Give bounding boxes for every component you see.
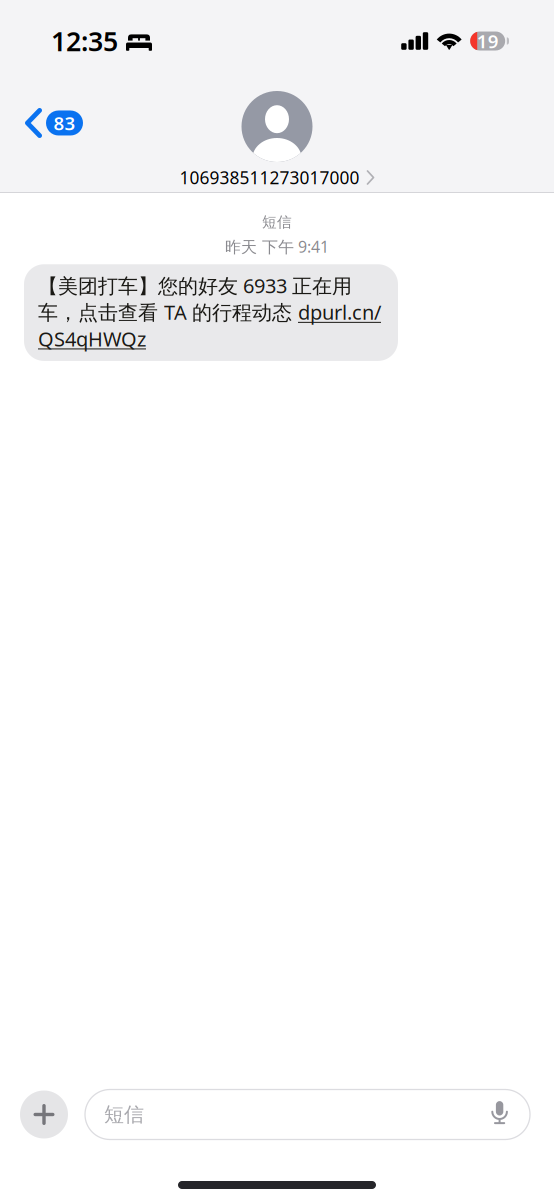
staticText: 12:35	[51, 23, 118, 59]
staticText: 【美团打车】您的好友 6933 正在用车，点击查看 TA 的行程动态 dpurl…	[38, 272, 381, 352]
button[interactable]: Add attachment	[20, 1090, 68, 1138]
button[interactable]: Back to Messages, 83 unread	[0, 102, 97, 144]
staticText: 106938511273017000	[179, 166, 359, 189]
button[interactable]: 106938511273017000	[179, 55, 374, 189]
button[interactable]: Dictate	[485, 1096, 514, 1132]
staticText: 19	[477, 29, 499, 53]
staticText: 短信	[104, 1102, 144, 1127]
staticText: 昨天 下午 9:41	[225, 236, 329, 257]
staticText: 83	[53, 111, 75, 135]
staticText: 短信	[262, 213, 292, 231]
